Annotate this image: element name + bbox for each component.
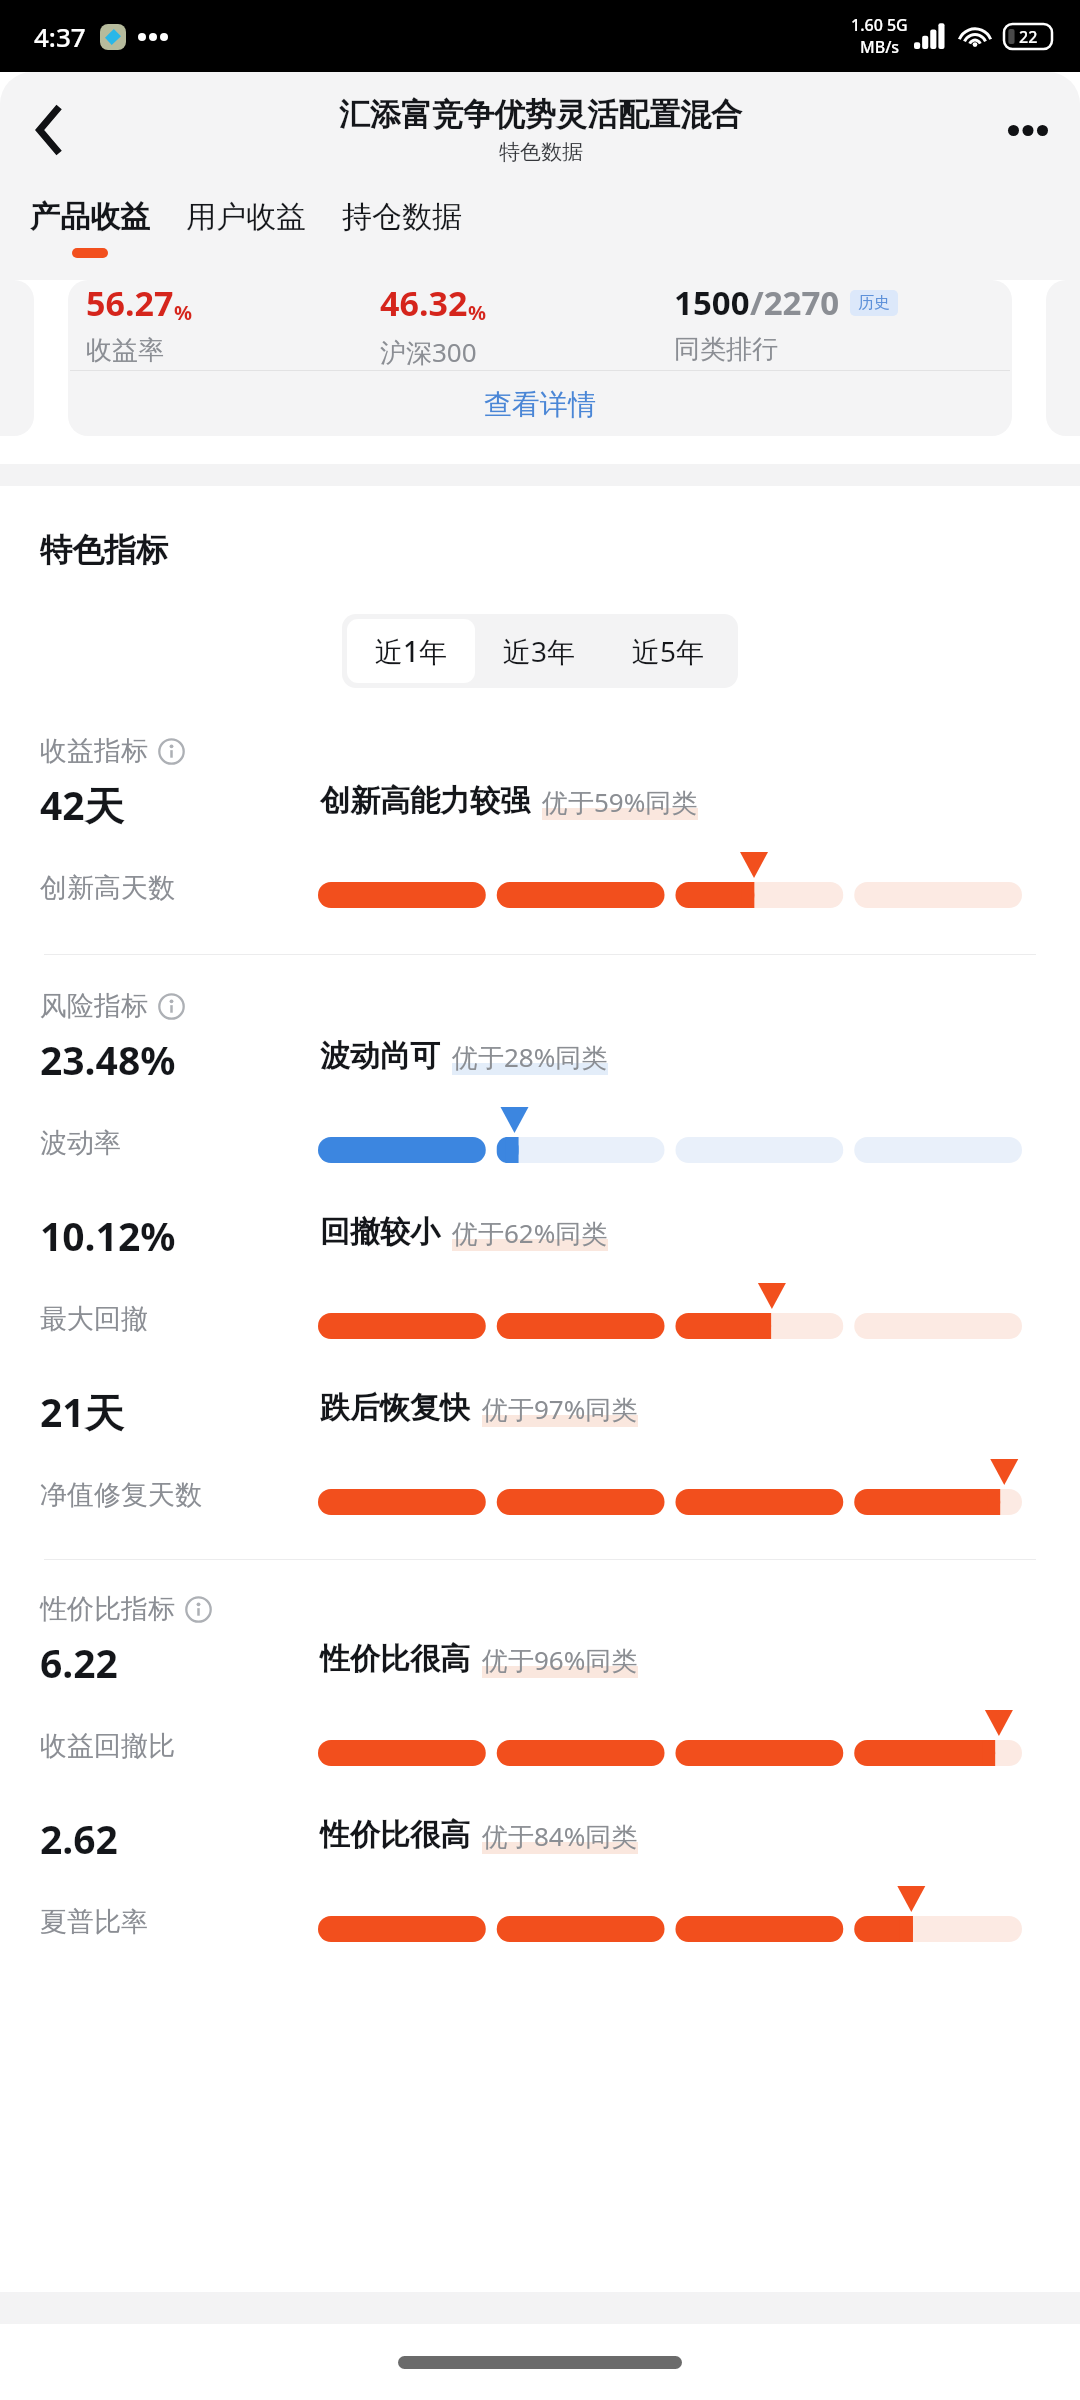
staticText: 最大回撤 (40, 1302, 148, 1336)
other: Info (158, 738, 185, 765)
staticText: 收益回撤比 (40, 1729, 175, 1763)
button[interactable]: 6.22 (0, 1626, 1080, 1782)
button[interactable]: 10.12% (0, 1199, 1080, 1355)
staticText: 汇添富竞争优势灵活配置混合 (339, 95, 742, 134)
staticText: 特色指标 (40, 530, 168, 570)
button[interactable]: Back (12, 92, 88, 168)
staticText: 收益指标 (40, 734, 148, 768)
staticText: 净值修复天数 (40, 1478, 202, 1512)
button[interactable]: 产品收益 (30, 188, 150, 280)
staticText: 4:37 (34, 19, 86, 54)
staticText: 创新高天数 (40, 871, 175, 905)
button[interactable]: 性价比指标 (40, 1592, 212, 1626)
staticText: 持仓数据 (342, 198, 462, 236)
button[interactable]: 21天 (0, 1375, 1080, 1531)
staticText: 收益率 (86, 334, 164, 367)
button[interactable]: 持仓数据 (342, 188, 462, 280)
staticText: 近5年 (632, 632, 705, 670)
staticText: 1.60 5G (851, 14, 908, 36)
staticText: 22 (1019, 26, 1038, 48)
staticText: 风险指标 (40, 989, 148, 1023)
button[interactable]: More options (990, 92, 1066, 168)
staticText: 同类排行 (674, 333, 778, 366)
other: Info (158, 993, 185, 1020)
staticText: 性价比很高 (320, 1816, 470, 1854)
button[interactable]: 近5年 (604, 619, 733, 683)
button[interactable]: 23.48% (0, 1023, 1080, 1179)
staticText: 性价比很高 (320, 1640, 470, 1678)
button[interactable]: 风险指标 (40, 989, 185, 1023)
staticText: 跌后恢复快 (320, 1389, 470, 1427)
staticText: /2270 (750, 280, 840, 325)
button[interactable]: 查看详情 (68, 372, 1012, 436)
staticText: 2.62 (40, 1812, 118, 1865)
staticText: 波动率 (40, 1126, 121, 1160)
staticText: 23.48% (40, 1033, 176, 1086)
staticText: % (174, 299, 193, 326)
button[interactable]: 用户收益 (186, 188, 306, 280)
staticText: 产品收益 (30, 198, 150, 236)
staticText: 优于97%同类 (482, 1391, 638, 1427)
staticText: 用户收益 (186, 198, 306, 236)
staticText: 42天 (40, 778, 124, 831)
button[interactable]: 近1年 (347, 619, 475, 683)
staticText: 优于59%同类 (542, 784, 698, 820)
button[interactable]: 2.62 (0, 1802, 1080, 1958)
staticText: MB/s (860, 36, 900, 58)
staticText: 特色数据 (499, 139, 583, 165)
staticText: 46.32 (380, 280, 468, 326)
staticText: 21天 (40, 1385, 124, 1438)
staticText: 优于28%同类 (452, 1039, 608, 1075)
staticText: 历史 (858, 293, 890, 313)
staticText: 回撤较小 (320, 1213, 440, 1251)
staticText: 10.12% (40, 1209, 176, 1262)
staticText: 近3年 (503, 632, 576, 670)
staticText: 优于62%同类 (452, 1215, 608, 1251)
button[interactable]: 56.27 (68, 280, 1012, 436)
staticText: 优于96%同类 (482, 1642, 638, 1678)
staticText: 近1年 (375, 632, 448, 670)
staticText: 优于84%同类 (482, 1818, 638, 1854)
staticText: 夏普比率 (40, 1905, 148, 1939)
staticText: 性价比指标 (40, 1592, 175, 1626)
staticText: 6.22 (40, 1636, 118, 1689)
staticText: 创新高能力较强 (320, 782, 530, 820)
staticText: 沪深300 (380, 334, 477, 370)
staticText: % (468, 299, 487, 326)
other: Info (185, 1596, 212, 1623)
staticText: 波动尚可 (320, 1037, 440, 1075)
staticText: 查看详情 (484, 387, 596, 422)
button[interactable]: 收益指标 (40, 734, 185, 768)
button[interactable]: 42天 (0, 768, 1080, 924)
staticText: 56.27 (86, 280, 174, 326)
button[interactable]: 近3年 (475, 619, 604, 683)
staticText: 1500 (674, 280, 750, 325)
